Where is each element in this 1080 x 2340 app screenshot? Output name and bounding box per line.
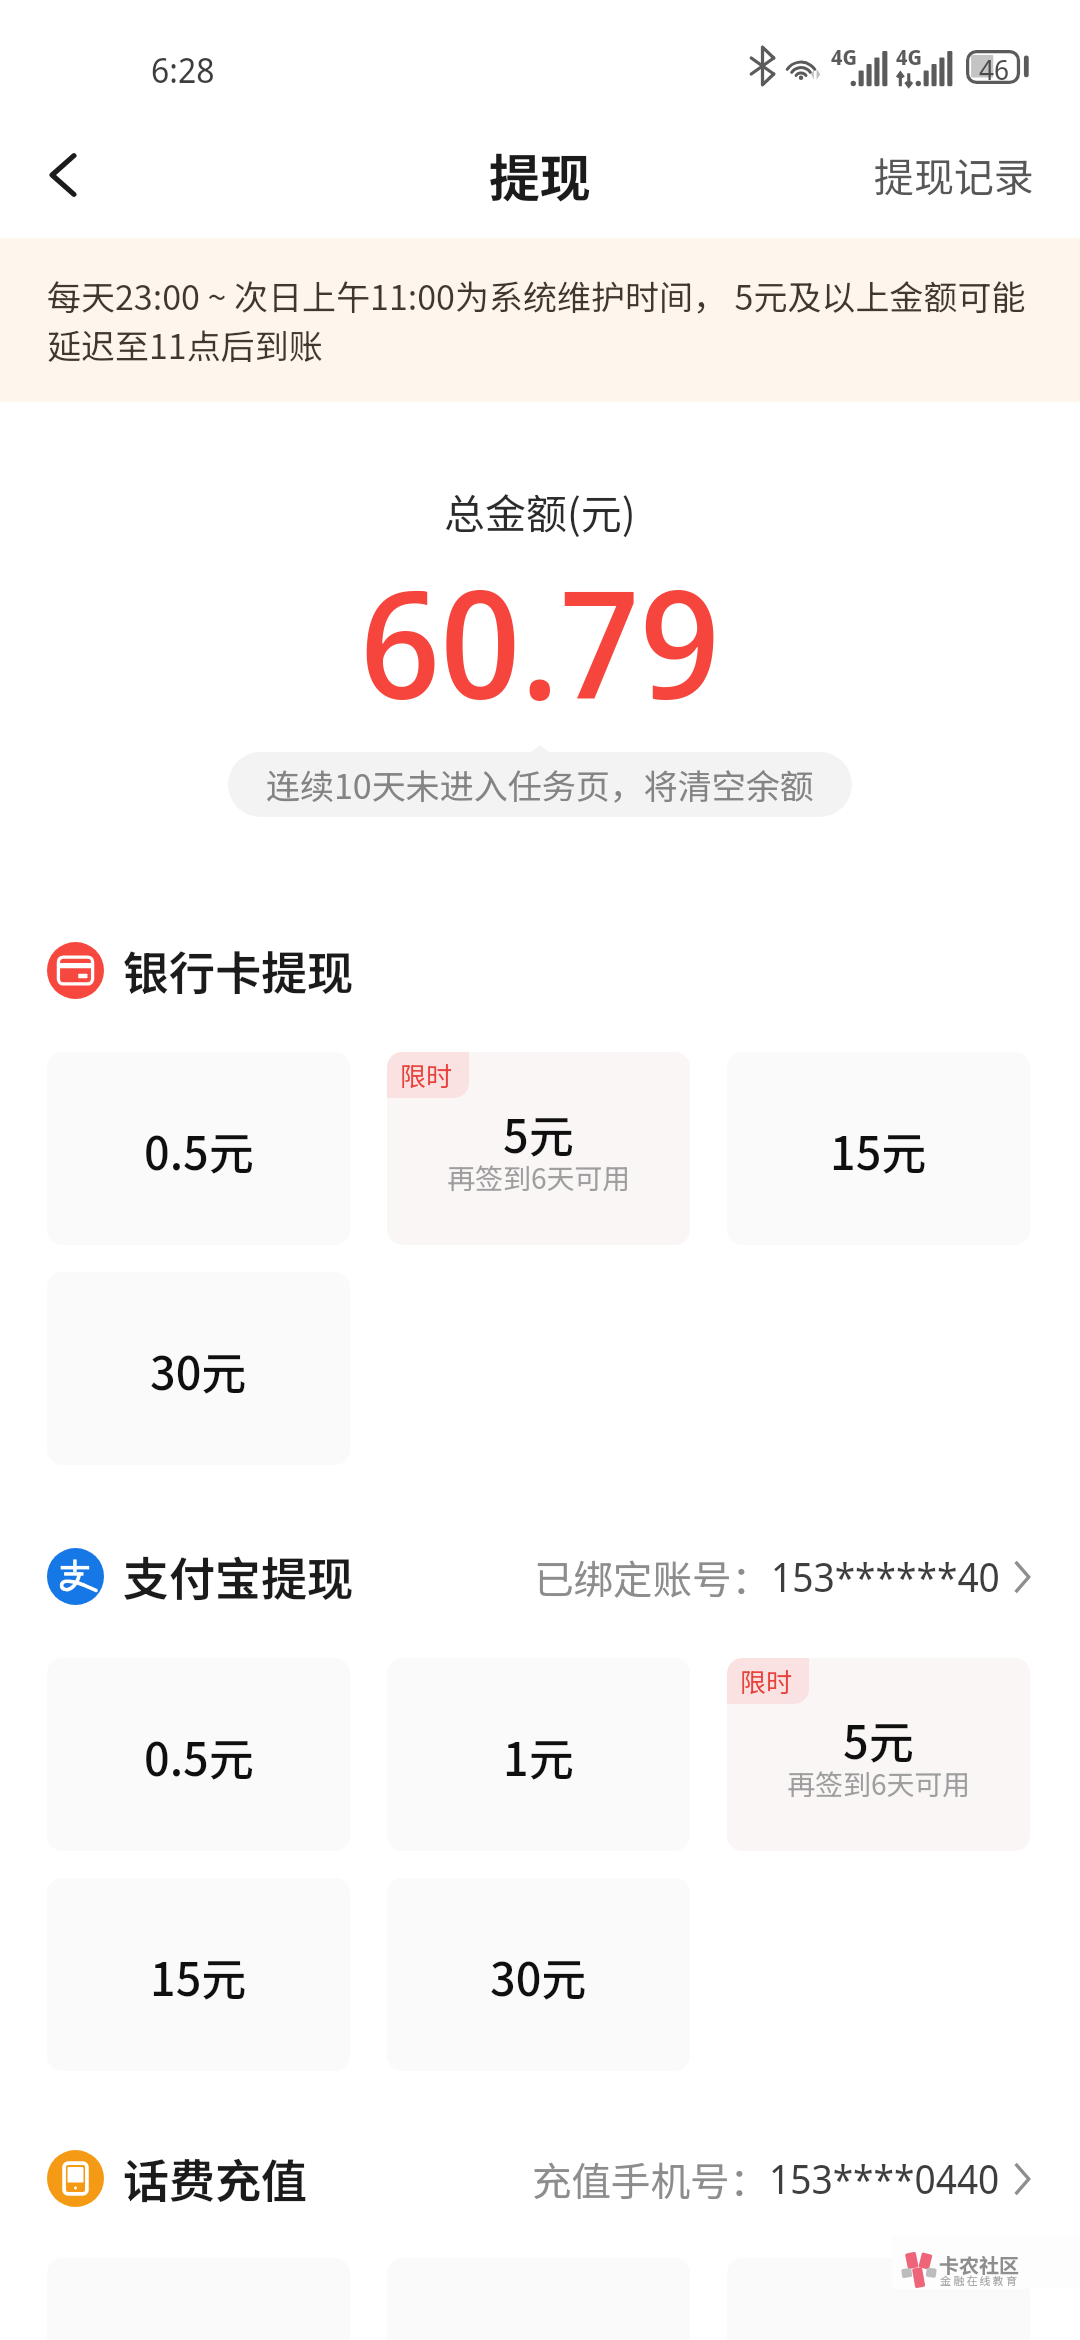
button[interactable]: 15元 — [727, 1052, 1030, 1245]
staticText: 充值手机号： — [532, 2150, 769, 2207]
button[interactable]: 0.5元 — [47, 1658, 350, 1851]
button[interactable]: 15元 — [47, 1878, 350, 2071]
staticText: 5元 — [503, 1101, 574, 1166]
button[interactable]: 30元 — [47, 1272, 350, 1465]
staticText: 话费充值 — [123, 2145, 307, 2212]
button[interactable]: 0.5元 — [47, 1052, 350, 1245]
button[interactable]: 提现记录 — [862, 134, 1046, 216]
staticText: 支付宝提现 — [123, 1543, 353, 1610]
staticText: 5元 — [843, 1707, 914, 1772]
staticText: 金融在线教育 — [940, 2272, 1020, 2288]
staticText: 153******40 — [771, 1550, 1000, 1604]
staticText: 提现记录 — [874, 146, 1034, 204]
staticText: 0.5元 — [144, 1724, 254, 1789]
staticText: 4G — [831, 43, 857, 72]
staticText: 153****0440 — [769, 2152, 1000, 2206]
staticText: 60.79 — [360, 540, 720, 743]
button[interactable]: 30元 — [387, 1878, 690, 2071]
staticText: 限时 — [400, 1056, 453, 1094]
button[interactable] — [727, 2258, 1030, 2340]
button[interactable]: 1元 — [387, 1658, 690, 1851]
staticText: 再签到6天可用 — [447, 1157, 631, 1198]
staticText: 每天23:00 ~ 次日上午11:00为系统维护时间， 5元及以上金额可能延迟至… — [47, 271, 1038, 369]
staticText: 30元 — [150, 1338, 247, 1403]
staticText: 0.5元 — [144, 1118, 254, 1183]
staticText: 总金额(元) — [444, 481, 636, 540]
staticText: 1元 — [503, 1724, 574, 1789]
staticText: 已绑定账号： — [534, 1548, 771, 1605]
button[interactable]: 已绑定账号： — [534, 1540, 1030, 1613]
staticText: 再签到6天可用 — [787, 1763, 971, 1804]
staticText: 15元 — [150, 1944, 247, 2009]
staticText: 限时 — [740, 1662, 793, 1700]
staticText: 30元 — [490, 1944, 587, 2009]
button[interactable]: 充值手机号： — [532, 2142, 1030, 2215]
button[interactable]: 5元 — [387, 1052, 690, 1245]
button[interactable]: 5元 — [727, 1658, 1030, 1851]
staticText: 连续10天未进入任务页，将清空余额 — [266, 760, 814, 809]
staticText: 卡农社区 — [939, 2250, 1019, 2279]
staticText: 6:28 — [151, 47, 215, 93]
staticText: 4G — [896, 43, 922, 72]
staticText: 提现 — [489, 138, 592, 212]
staticText: 46 — [979, 50, 1010, 88]
button[interactable]: Back — [20, 132, 106, 218]
staticText: 15元 — [830, 1118, 927, 1183]
staticText: 银行卡提现 — [123, 937, 353, 1004]
